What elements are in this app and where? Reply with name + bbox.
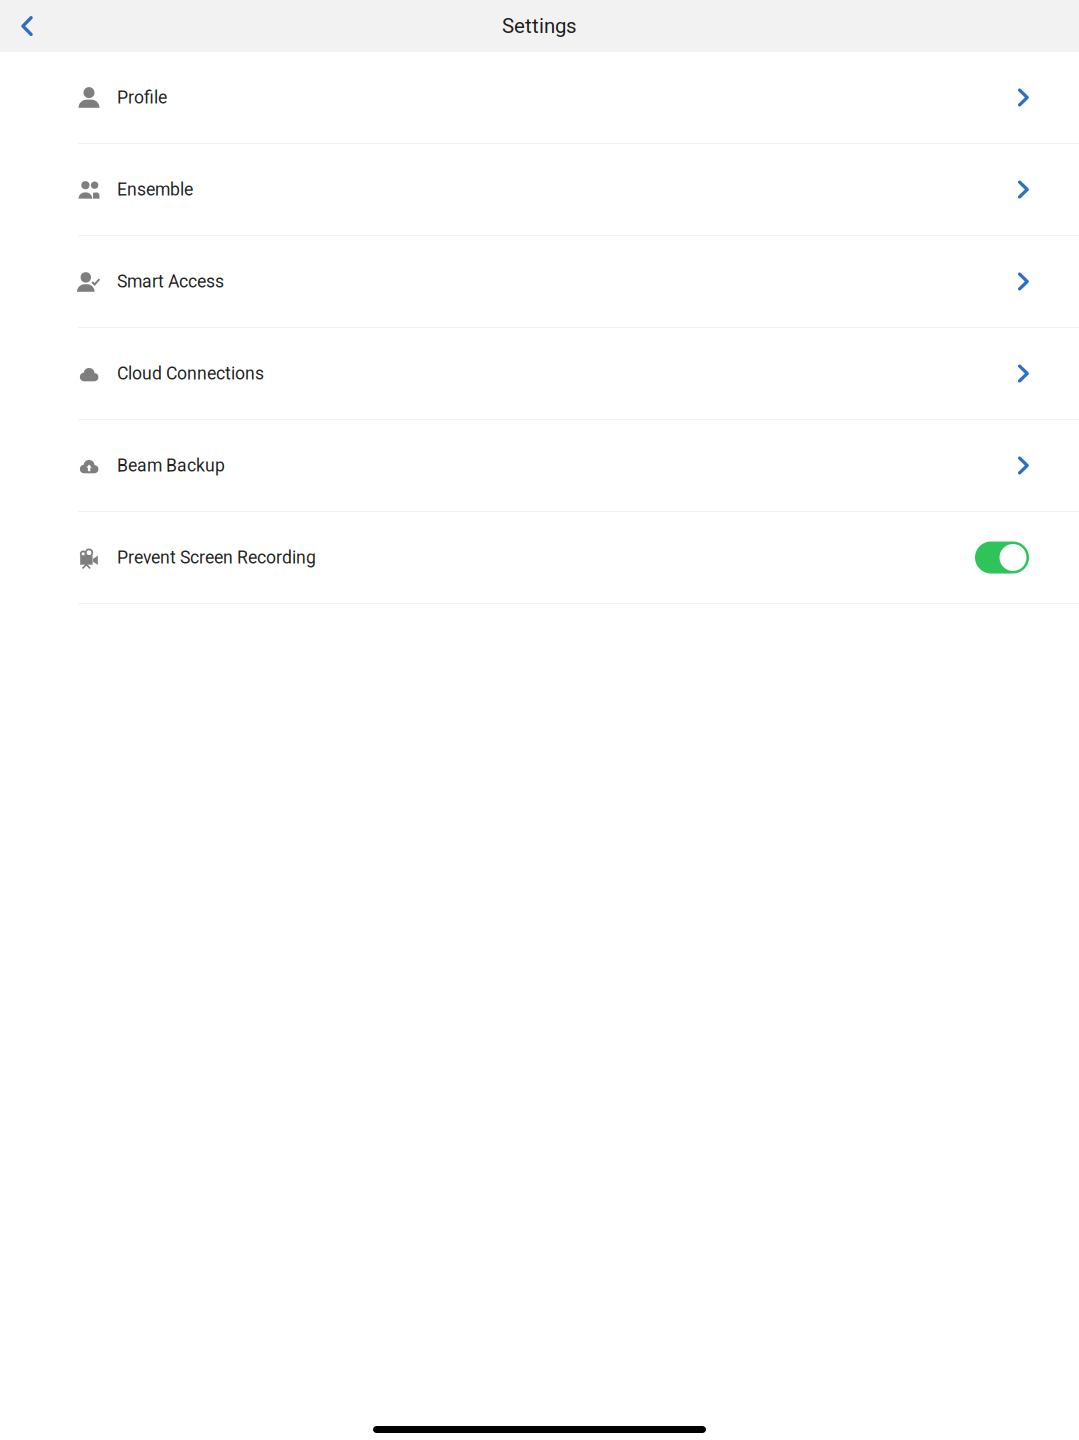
button[interactable]: Prevent Screen Recording, on bbox=[975, 541, 1029, 573]
button[interactable]: Back bbox=[0, 0, 54, 52]
staticText: Cloud Connections bbox=[117, 363, 264, 384]
button[interactable]: Beam Backup bbox=[0, 420, 1079, 512]
staticText: Beam Backup bbox=[117, 455, 225, 476]
button[interactable]: Smart Access bbox=[0, 236, 1079, 328]
staticText: Profile bbox=[117, 87, 167, 108]
button[interactable]: Prevent Screen Recording bbox=[0, 512, 1079, 604]
staticText: Settings bbox=[502, 14, 577, 38]
button[interactable]: Ensemble bbox=[0, 144, 1079, 236]
staticText: Smart Access bbox=[117, 271, 224, 292]
button[interactable]: Profile bbox=[0, 52, 1079, 144]
staticText: Ensemble bbox=[117, 179, 193, 200]
button[interactable]: Cloud Connections bbox=[0, 328, 1079, 420]
staticText: Prevent Screen Recording bbox=[117, 547, 316, 568]
